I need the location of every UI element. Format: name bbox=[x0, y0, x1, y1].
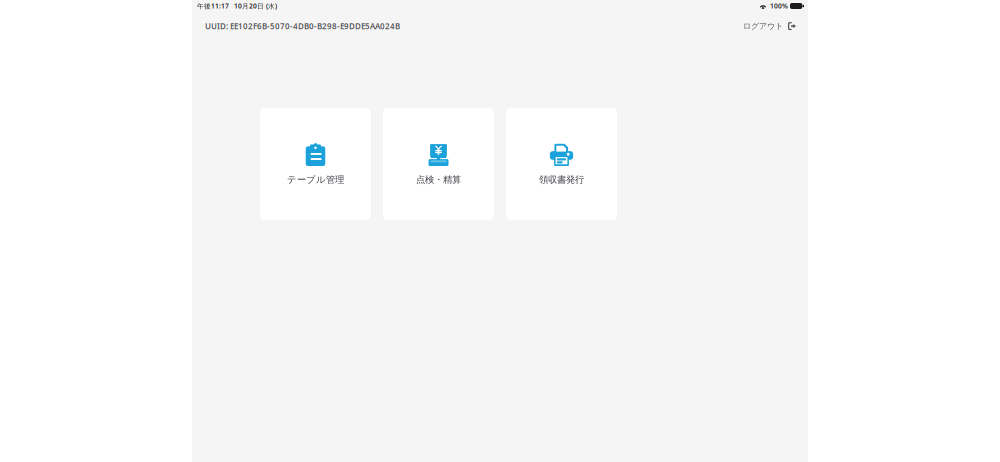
button[interactable]: テーブル管理 bbox=[260, 108, 371, 220]
staticText: 100% bbox=[770, 2, 788, 10]
staticText: テーブル管理 bbox=[287, 174, 344, 185]
staticText: 午後11:17 bbox=[197, 2, 229, 10]
staticText: 10月20日 (水) bbox=[234, 2, 277, 10]
staticText: 点検・精算 bbox=[416, 174, 461, 185]
staticText: ログアウト bbox=[743, 21, 783, 31]
button[interactable]: 点検・精算 bbox=[383, 108, 494, 220]
button[interactable]: 領収書発行 bbox=[506, 108, 617, 220]
staticText: 領収書発行 bbox=[539, 174, 584, 185]
staticText: UUID: EE102F6B-5070-4DB0-B298-E9DDE5AA02… bbox=[205, 21, 400, 31]
button[interactable]: ログアウト bbox=[743, 17, 796, 35]
